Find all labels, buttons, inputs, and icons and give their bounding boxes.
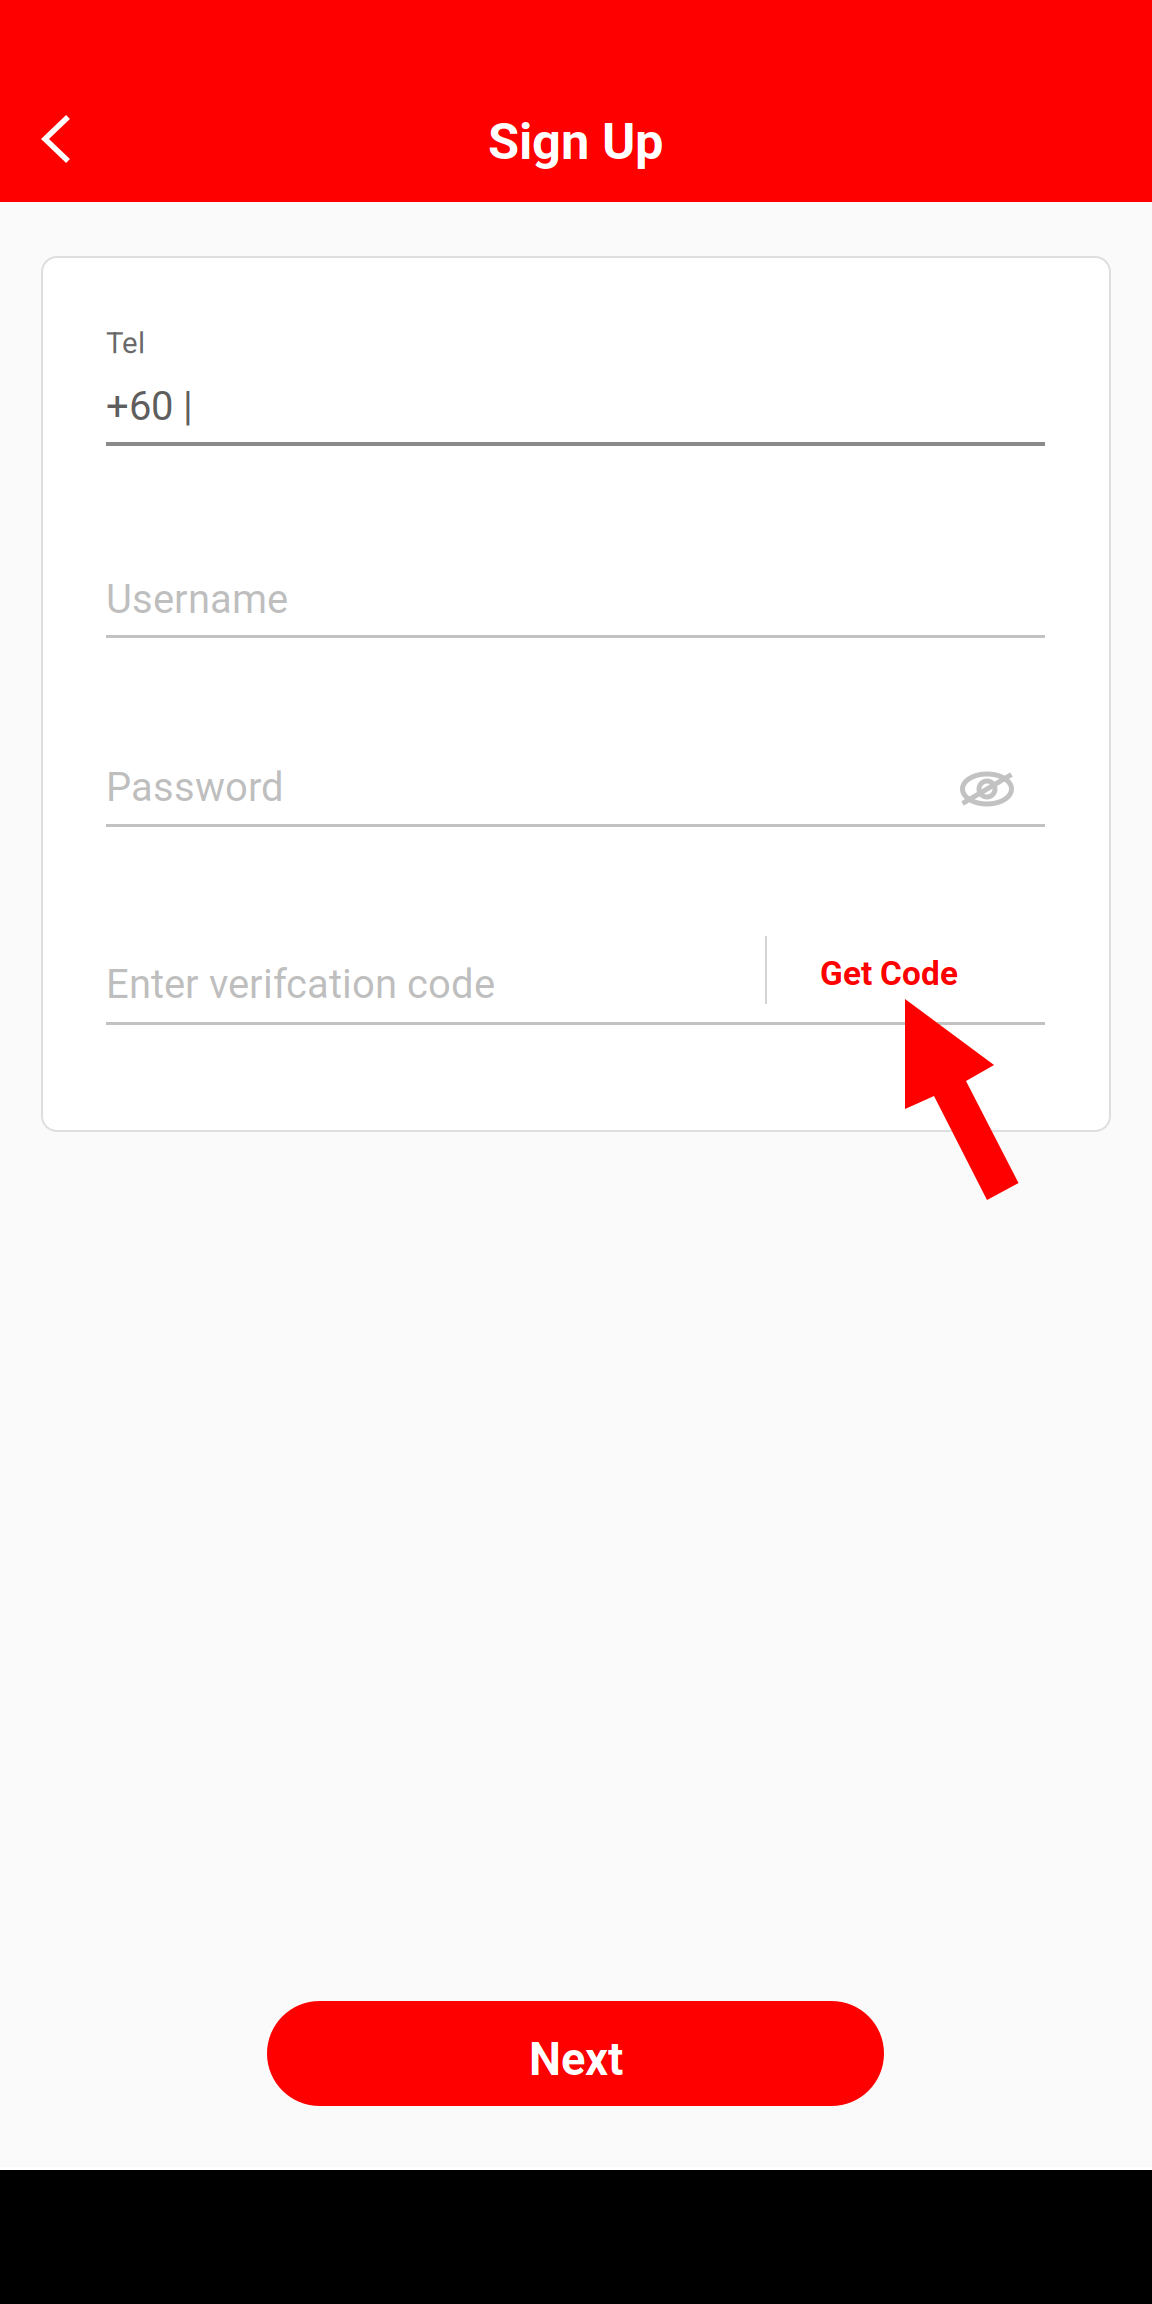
button[interactable]: Tel <box>106 300 1045 446</box>
staticText: +60 | <box>106 383 193 430</box>
button[interactable]: Enter verifcation code <box>106 951 746 1025</box>
button[interactable]: Show password <box>944 759 1030 819</box>
staticText: Sign Up <box>488 112 664 171</box>
button[interactable]: Username <box>106 566 1045 638</box>
staticText: Get Code <box>820 954 958 993</box>
button[interactable]: Get Code <box>790 936 1010 1004</box>
staticText: Enter verifcation code <box>106 961 495 1008</box>
button[interactable]: Next <box>267 2001 884 2106</box>
staticText: Next <box>529 2033 623 2086</box>
staticText: Username <box>106 576 288 623</box>
button[interactable]: Back <box>14 88 100 192</box>
button[interactable]: Password <box>106 754 1045 827</box>
staticText: Password <box>106 764 284 811</box>
staticText: Tel <box>106 326 145 360</box>
